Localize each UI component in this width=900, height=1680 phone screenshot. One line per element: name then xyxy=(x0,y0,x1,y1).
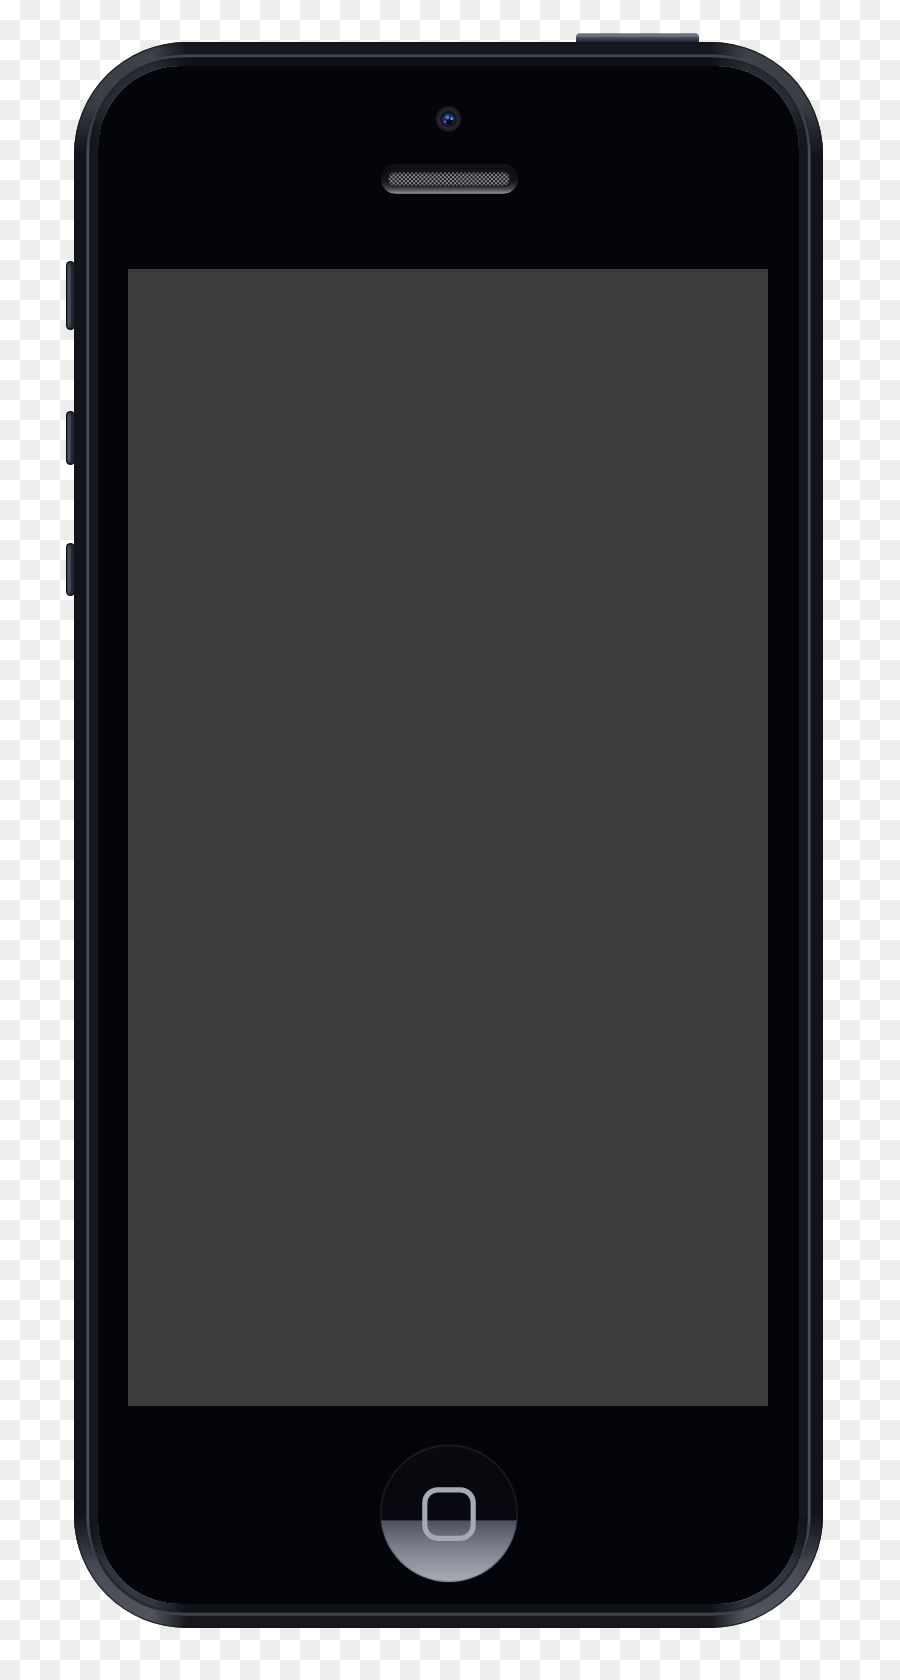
button[interactable]: Black smartphone mockup xyxy=(0,0,900,1680)
